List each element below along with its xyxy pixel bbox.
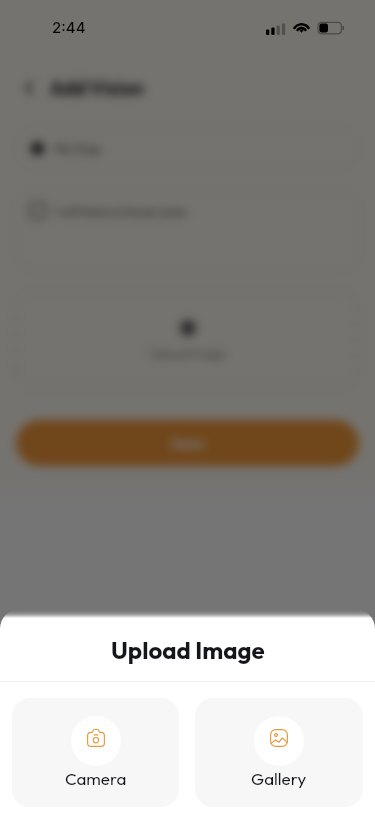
- other: Camera: [87, 729, 105, 747]
- staticText: I will have a house soon: [55, 203, 187, 219]
- button[interactable]: Save: [16, 420, 359, 466]
- staticText: Gallery: [251, 768, 307, 789]
- staticText: Camera: [65, 768, 127, 789]
- other: Gallery: [270, 729, 288, 747]
- staticText: 2:44: [52, 18, 86, 36]
- button[interactable]: Camera: [12, 698, 179, 807]
- button[interactable]: Gallery: [195, 698, 363, 807]
- staticText: Save: [171, 434, 205, 453]
- staticText: Add Vision: [50, 76, 144, 100]
- staticText: Upload Image: [111, 635, 265, 665]
- staticText: My Dog: [55, 140, 100, 156]
